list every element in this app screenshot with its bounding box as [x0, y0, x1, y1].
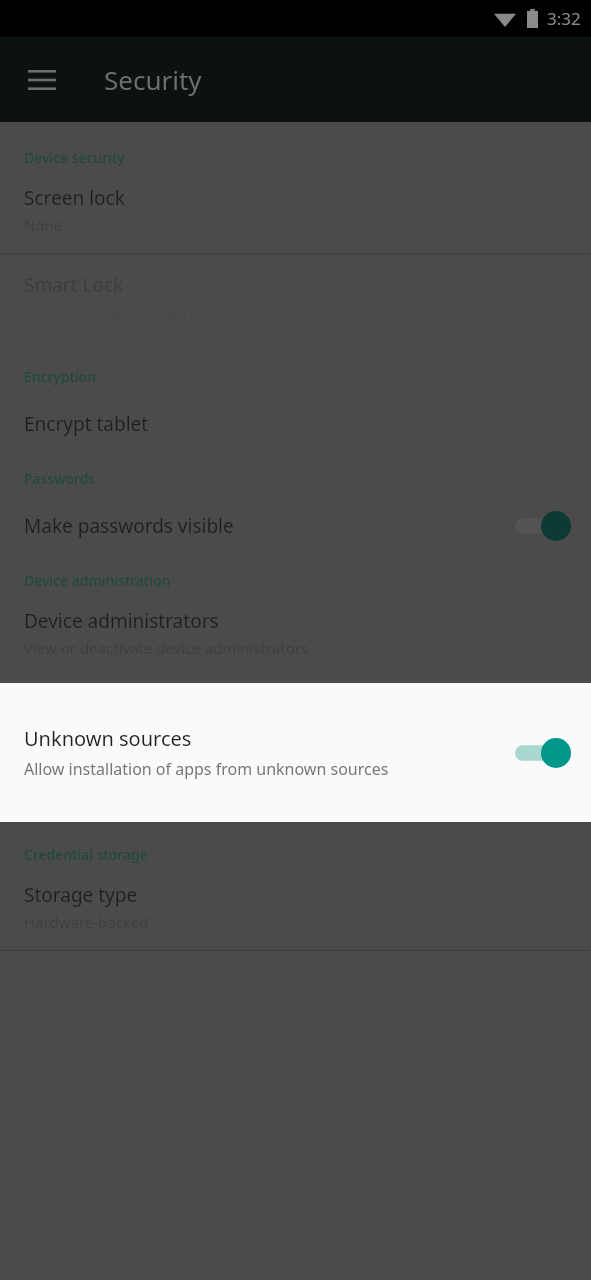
staticText: Storage type: [24, 882, 138, 908]
staticText: Device security: [24, 148, 575, 167]
button[interactable]: Make passwords visible: [0, 488, 591, 564]
staticText: Device administrators: [24, 608, 219, 634]
staticText: Screen lock: [24, 185, 125, 211]
staticText: Hardware-backed: [24, 912, 149, 932]
button[interactable]: Device administrators: [0, 590, 591, 676]
button[interactable]: Screen lock: [0, 167, 591, 253]
staticText: Unknown sources: [24, 725, 192, 752]
staticText: Encrypt tablet: [24, 411, 149, 437]
button[interactable]: Encrypt tablet: [0, 386, 591, 462]
button[interactable]: Open navigation menu: [14, 52, 70, 108]
staticText: Device administration: [24, 571, 575, 590]
staticText: View or deactivate device administrators: [24, 638, 309, 658]
staticText: Security: [104, 62, 202, 97]
staticText: Smart Lock: [24, 272, 124, 298]
button[interactable]: Unknown sources: [0, 683, 591, 822]
staticText: None: [24, 215, 63, 235]
staticText: Make passwords visible: [24, 513, 234, 539]
staticText: Credential storage: [24, 845, 575, 864]
button[interactable]: Storage type: [0, 864, 591, 950]
staticText: Allow installation of apps from unknown …: [24, 758, 389, 780]
staticText: Passwords: [24, 469, 575, 488]
staticText: 3:32: [547, 7, 581, 30]
staticText: Encryption: [24, 367, 575, 386]
